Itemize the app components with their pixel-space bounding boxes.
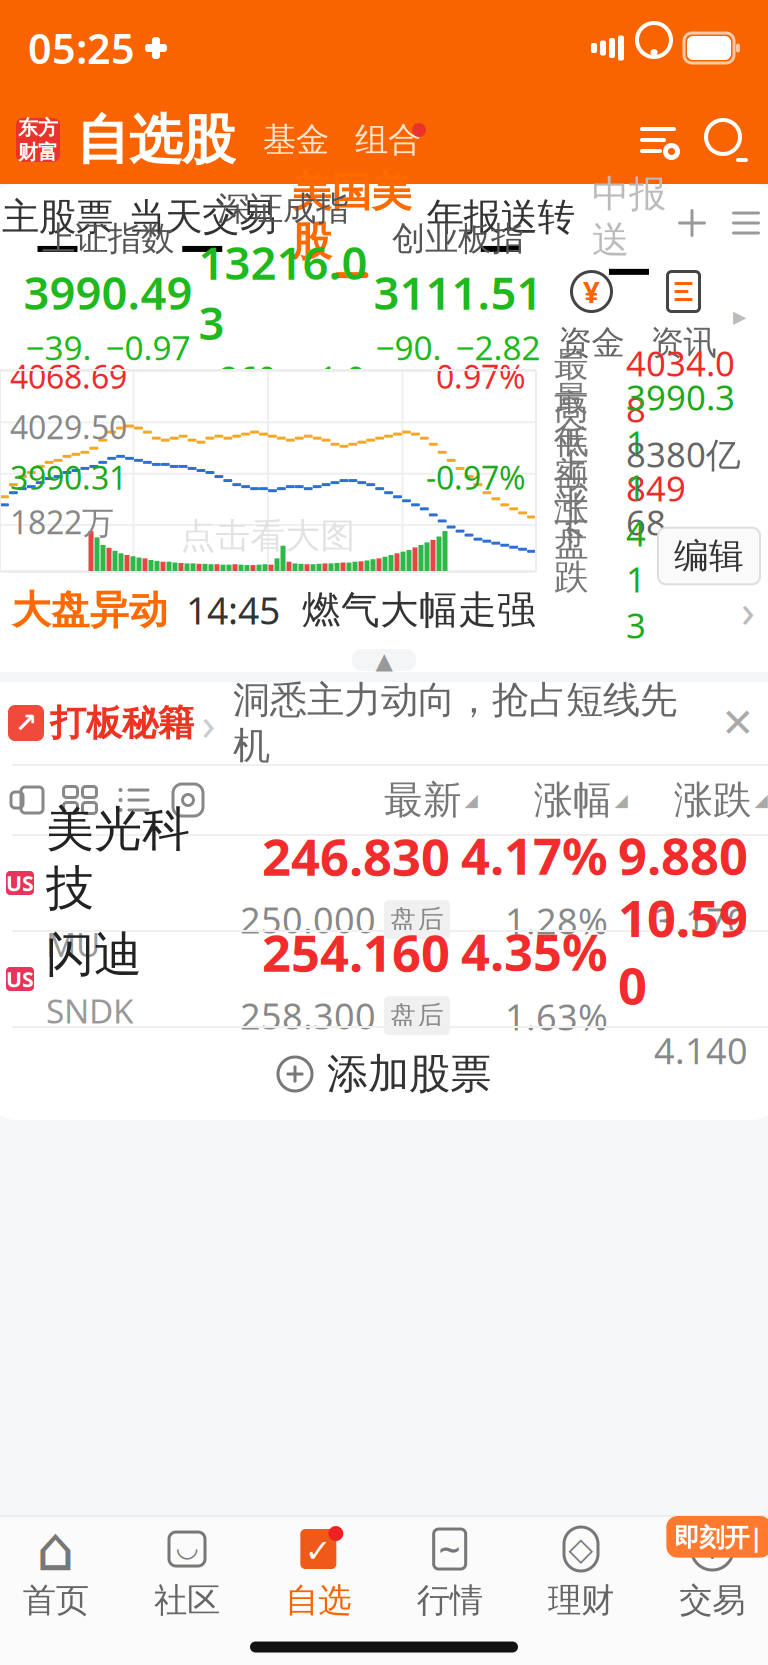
button[interactable]: 指数分时图: [0, 370, 536, 572]
staticText: 3111.51: [373, 262, 542, 322]
staticText: 849: [626, 465, 686, 511]
button[interactable]: 美国美股: [291, 168, 411, 278]
button[interactable]: US: [6, 836, 762, 930]
staticText: 3.170: [654, 897, 748, 944]
staticText: ◇: [568, 1531, 593, 1567]
staticText: 交易: [679, 1580, 745, 1621]
button[interactable]: 深证成指: [195, 188, 370, 444]
staticText: 美光科技: [46, 800, 190, 918]
staticText: 首页: [23, 1580, 89, 1621]
button[interactable]: 添加分组: [668, 203, 712, 243]
staticText: ¥: [583, 272, 600, 311]
button[interactable]: 编辑: [658, 528, 760, 584]
staticText: 美国美股: [291, 168, 411, 266]
staticText: 上证指数: [42, 218, 174, 259]
staticText: 金额: [554, 411, 589, 497]
staticText: ↗: [15, 708, 37, 738]
staticText: 即刻开|: [674, 1520, 763, 1554]
staticText: 平盘: [554, 479, 589, 565]
button[interactable]: 资讯: [637, 268, 729, 363]
staticText: −39.01: [25, 325, 91, 414]
staticText: −0.97%: [105, 325, 190, 414]
button[interactable]: 交易: [647, 1517, 768, 1629]
button[interactable]: 东方财富: [16, 118, 60, 162]
button[interactable]: 搜索: [684, 114, 752, 166]
staticText: ◢: [464, 790, 477, 810]
button[interactable]: 组合: [329, 119, 421, 160]
button[interactable]: 中报送: [590, 171, 668, 275]
staticText: 社区: [154, 1580, 220, 1621]
staticText: −2.82%: [455, 325, 540, 414]
button[interactable]: 上证指数: [20, 218, 195, 414]
staticText: 最新: [384, 776, 462, 824]
staticText: −1.93%: [299, 355, 365, 444]
staticText: 组合: [355, 119, 421, 160]
staticText: 下跌: [554, 513, 589, 599]
staticText: 资讯: [650, 322, 716, 363]
staticText: ›: [201, 693, 215, 753]
staticText: ▸: [733, 301, 746, 331]
button[interactable]: ✓: [253, 1517, 384, 1629]
button[interactable]: ⌂: [0, 1517, 121, 1629]
staticText: 4034.08: [626, 340, 735, 432]
staticText: 闪迪: [46, 925, 142, 984]
staticText: -0.97%: [426, 456, 526, 498]
button[interactable]: 年报送转: [427, 194, 575, 252]
button[interactable]: ◡: [121, 1517, 253, 1629]
button[interactable]: 收起: [352, 649, 416, 671]
staticText: 1413: [626, 464, 646, 648]
staticText: 主股票: [2, 194, 113, 240]
staticText: 最高: [554, 343, 589, 429]
button[interactable]: 当天交易: [128, 194, 276, 252]
staticText: 68: [626, 499, 666, 545]
button[interactable]: 卡片模式: [4, 780, 48, 820]
button[interactable]: ∼: [384, 1517, 515, 1629]
staticText: 0.97%: [436, 355, 526, 397]
staticText: 4.17%: [461, 821, 608, 889]
staticText: 打板秘籍: [50, 701, 194, 745]
staticText: ◢: [754, 790, 767, 810]
staticText: 258.300: [240, 992, 376, 1039]
staticText: 1822万: [10, 500, 114, 543]
button[interactable]: 基金: [235, 119, 329, 160]
button[interactable]: 自选设置: [632, 114, 684, 166]
staticText: 9.880: [618, 821, 748, 889]
button[interactable]: 创业板指: [370, 218, 545, 414]
staticText: ⌂: [36, 1514, 75, 1584]
button[interactable]: 涨幅: [478, 776, 628, 824]
button[interactable]: 添加股票: [0, 1028, 768, 1120]
staticText: 盘后: [390, 903, 444, 936]
button[interactable]: 列表模式: [112, 780, 156, 820]
staticText: 理财: [548, 1580, 614, 1621]
button[interactable]: 涨跌: [628, 776, 768, 824]
staticText: 13216.03: [198, 232, 367, 352]
staticText: ✓: [305, 1533, 332, 1569]
button[interactable]: US: [6, 932, 762, 1026]
button[interactable]: ◇: [515, 1517, 647, 1629]
staticText: 250.000: [240, 896, 376, 943]
staticText: 最低: [554, 377, 589, 463]
button[interactable]: ↗: [8, 677, 677, 769]
button[interactable]: 大盘异动: [0, 572, 768, 648]
staticText: 1.28%: [505, 897, 608, 944]
staticText: MU: [46, 922, 100, 966]
staticText: 中报送: [592, 171, 666, 263]
staticText: 年报送转: [427, 194, 575, 240]
staticText: 洞悉主力动向，抢占短线先机: [233, 677, 677, 769]
staticText: 盘后: [390, 999, 444, 1032]
button[interactable]: 最新: [328, 776, 478, 824]
staticText: 1.63%: [505, 993, 608, 1040]
button[interactable]: 主股票: [2, 194, 113, 252]
staticText: −90.24: [375, 325, 441, 414]
button[interactable]: ¥: [545, 268, 637, 363]
button[interactable]: 关闭广告: [716, 701, 760, 745]
staticText: ◢: [614, 790, 627, 810]
staticText: 14:45: [186, 585, 280, 635]
button[interactable]: 网格模式: [58, 780, 102, 820]
staticText: 基金: [263, 119, 329, 160]
staticText: ∼: [437, 1532, 462, 1566]
button[interactable]: 更多模式: [166, 780, 210, 820]
button[interactable]: 全部分组: [712, 203, 766, 243]
button[interactable]: 自选股: [60, 107, 235, 173]
staticText: 当天交易: [128, 194, 276, 240]
